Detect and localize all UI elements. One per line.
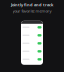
staticText: Jointly find and track: [11, 2, 53, 7]
staticText: your favorite memory: [12, 8, 51, 14]
